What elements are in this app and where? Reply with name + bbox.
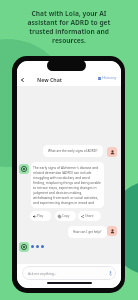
button[interactable]: Play <box>30 211 51 221</box>
button[interactable]: History <box>97 74 118 82</box>
button[interactable]: Ask me anything... <box>22 266 116 280</box>
staticText: History <box>102 75 117 81</box>
other: Voice input <box>109 271 112 276</box>
staticText: Play <box>37 214 44 218</box>
staticText: Copy <box>62 214 70 218</box>
staticText: What are the early signs of ADRD? <box>48 149 98 153</box>
staticText: Share <box>85 214 94 218</box>
button[interactable]: What are the early signs of ADRD? <box>43 145 103 157</box>
button[interactable]: Share <box>78 211 101 221</box>
button[interactable]: Back <box>17 74 28 85</box>
button[interactable]: How can I get help? <box>68 226 107 238</box>
staticText: New Chat <box>37 76 63 83</box>
staticText: The early signs of Alzheimer's disease a… <box>33 165 102 205</box>
button[interactable]: The early signs of Alzheimer's disease a… <box>31 162 104 208</box>
staticText: Ask me anything... <box>28 271 57 275</box>
button[interactable]: Copy <box>55 211 76 221</box>
staticText: How can I get help? <box>73 230 102 234</box>
staticText: Chat with Lola, your AI assistant for AD… <box>21 9 117 45</box>
